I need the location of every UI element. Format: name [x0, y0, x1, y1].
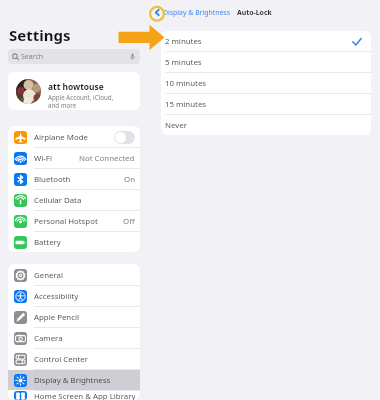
staticText: Not Connected: [79, 153, 135, 164]
button[interactable]: Back to Display & Brightness: [151, 4, 230, 20]
button[interactable]: Battery: [8, 232, 140, 252]
staticText: Home Screen & App Library: [34, 391, 135, 400]
button[interactable]: General: [8, 265, 140, 285]
button[interactable]: Wi-Fi: [8, 148, 140, 168]
button[interactable]: Apple Pencil: [8, 307, 140, 327]
staticText: 10 minutes: [165, 78, 207, 89]
staticText: Personal Hotspot: [34, 216, 98, 227]
staticText: On: [124, 174, 135, 185]
staticText: Auto-Lock: [237, 8, 272, 17]
button[interactable]: Camera: [8, 328, 140, 348]
button[interactable]: Cellular Data: [8, 190, 140, 210]
staticText: Control Center: [34, 354, 88, 365]
button[interactable]: att howtouse: [8, 72, 140, 110]
staticText: Accessibility: [34, 291, 79, 302]
button[interactable]: Bluetooth: [8, 169, 140, 189]
button[interactable]: Display & Brightness: [8, 370, 140, 390]
staticText: Settings: [9, 25, 71, 45]
staticText: Wi-Fi: [34, 153, 52, 164]
staticText: 15 minutes: [165, 99, 207, 110]
button[interactable]: 2 minutes: [161, 31, 371, 51]
button[interactable]: 10 minutes: [161, 73, 371, 93]
staticText: 5 minutes: [165, 57, 202, 68]
staticText: Cellular Data: [34, 195, 82, 206]
staticText: Display & Brightness: [34, 375, 111, 386]
button[interactable]: Search: [8, 49, 140, 64]
staticText: Display & Brightness: [163, 8, 230, 17]
button[interactable]: Control Center: [8, 349, 140, 369]
button[interactable]: 15 minutes: [161, 94, 371, 114]
staticText: Battery: [34, 237, 61, 248]
button[interactable]: Airplane Mode toggle: [114, 131, 135, 144]
staticText: Airplane Mode: [34, 132, 88, 143]
button[interactable]: Accessibility: [8, 286, 140, 306]
staticText: Search: [21, 52, 44, 62]
staticText: Off: [123, 216, 135, 227]
staticText: Never: [165, 120, 187, 131]
staticText: Camera: [34, 333, 63, 344]
staticText: Bluetooth: [34, 174, 71, 185]
staticText: Apple Pencil: [34, 312, 79, 323]
staticText: General: [34, 270, 63, 281]
button[interactable]: Airplane Mode: [8, 127, 140, 147]
button[interactable]: Home Screen & App Library: [8, 391, 140, 400]
staticText: att howtouse: [48, 81, 104, 92]
button[interactable]: Never: [161, 115, 371, 135]
button[interactable]: Personal Hotspot: [8, 211, 140, 231]
staticText: 2 minutes: [165, 36, 202, 47]
button[interactable]: 5 minutes: [161, 52, 371, 72]
staticText: Apple Account, iCloud, and more: [48, 93, 114, 110]
